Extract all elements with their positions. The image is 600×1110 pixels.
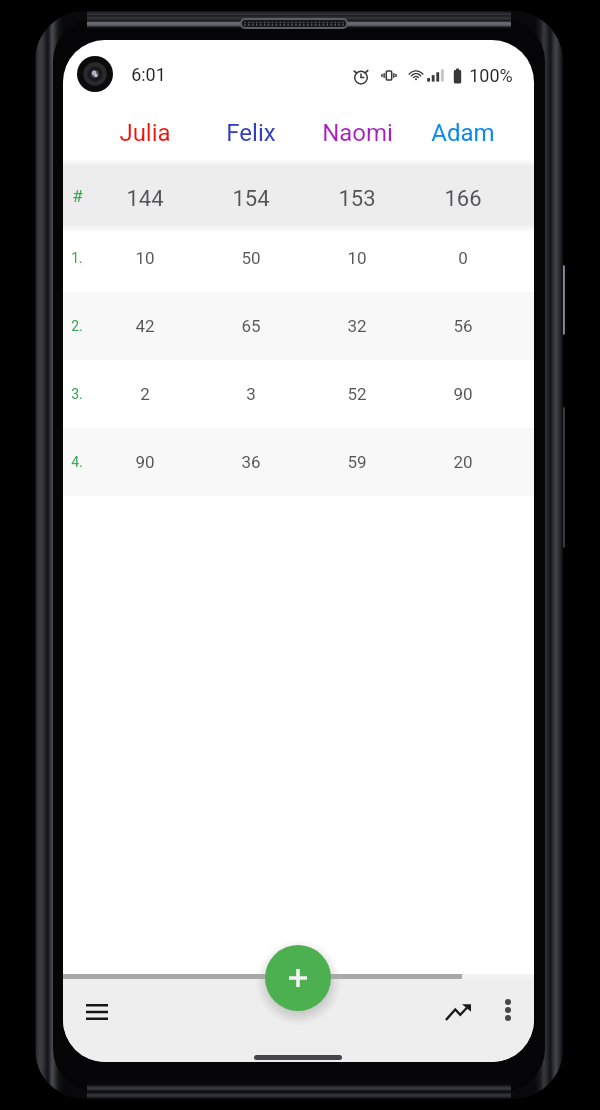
button[interactable]: Adam xyxy=(410,110,516,165)
staticText: # xyxy=(72,186,83,206)
button[interactable]: Menu xyxy=(73,988,121,1036)
staticText: 52 xyxy=(347,384,367,404)
button[interactable]: Julia xyxy=(91,110,198,165)
staticText: 2. xyxy=(71,318,83,334)
staticText: 50 xyxy=(241,248,261,268)
button[interactable]: Felix xyxy=(198,110,304,165)
staticText: Julia xyxy=(119,119,171,147)
staticText: 166 xyxy=(444,186,482,212)
staticText: 90 xyxy=(135,452,155,472)
staticText: 20 xyxy=(453,452,473,472)
staticText: Adam xyxy=(431,119,495,147)
button[interactable]: 3. xyxy=(63,360,534,428)
button[interactable]: Naomi xyxy=(304,110,410,165)
staticText: 4. xyxy=(71,454,83,470)
staticText: 0 xyxy=(458,248,468,268)
button[interactable]: 4. xyxy=(63,428,534,496)
staticText: 10 xyxy=(135,248,155,268)
button[interactable]: Statistics xyxy=(434,988,482,1036)
staticText: 6:01 xyxy=(131,64,166,85)
staticText: 42 xyxy=(135,316,155,336)
button[interactable]: More options xyxy=(486,988,530,1032)
button[interactable]: 2. xyxy=(63,292,534,360)
staticText: 10 xyxy=(347,248,367,268)
staticText: 1. xyxy=(71,250,83,266)
button[interactable]: Add xyxy=(265,945,331,1011)
staticText: 56 xyxy=(453,316,473,336)
staticText: 2 xyxy=(140,384,150,404)
staticText: 3 xyxy=(246,384,256,404)
staticText: 153 xyxy=(338,186,376,212)
staticText: Felix xyxy=(226,119,276,147)
staticText: 90 xyxy=(453,384,473,404)
button[interactable]: 1. xyxy=(63,224,534,292)
staticText: 59 xyxy=(347,452,367,472)
staticText: 36 xyxy=(241,452,261,472)
staticText: 144 xyxy=(126,186,164,212)
staticText: 65 xyxy=(241,316,261,336)
staticText: 3. xyxy=(71,386,83,402)
staticText: Naomi xyxy=(322,119,393,147)
staticText: 32 xyxy=(347,316,367,336)
staticText: 100% xyxy=(469,65,513,86)
staticText: 154 xyxy=(232,186,270,212)
